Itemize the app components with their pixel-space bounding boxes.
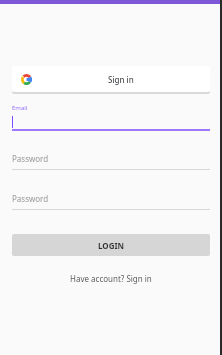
staticText: Password (12, 193, 49, 204)
staticText: Email (12, 104, 28, 112)
staticText: LOGIN (98, 240, 125, 251)
button[interactable]: Have account? Sign in (12, 270, 210, 286)
button[interactable]: Password (12, 151, 210, 170)
button[interactable]: Google (12, 66, 210, 92)
staticText: Have account? Sign in (70, 273, 152, 284)
staticText: Sign in (108, 74, 134, 85)
button[interactable]: Email (12, 104, 210, 131)
staticText: Password (12, 153, 49, 164)
button[interactable]: LOGIN (12, 234, 210, 256)
other: Google (21, 74, 32, 85)
button[interactable]: Password (12, 191, 210, 210)
